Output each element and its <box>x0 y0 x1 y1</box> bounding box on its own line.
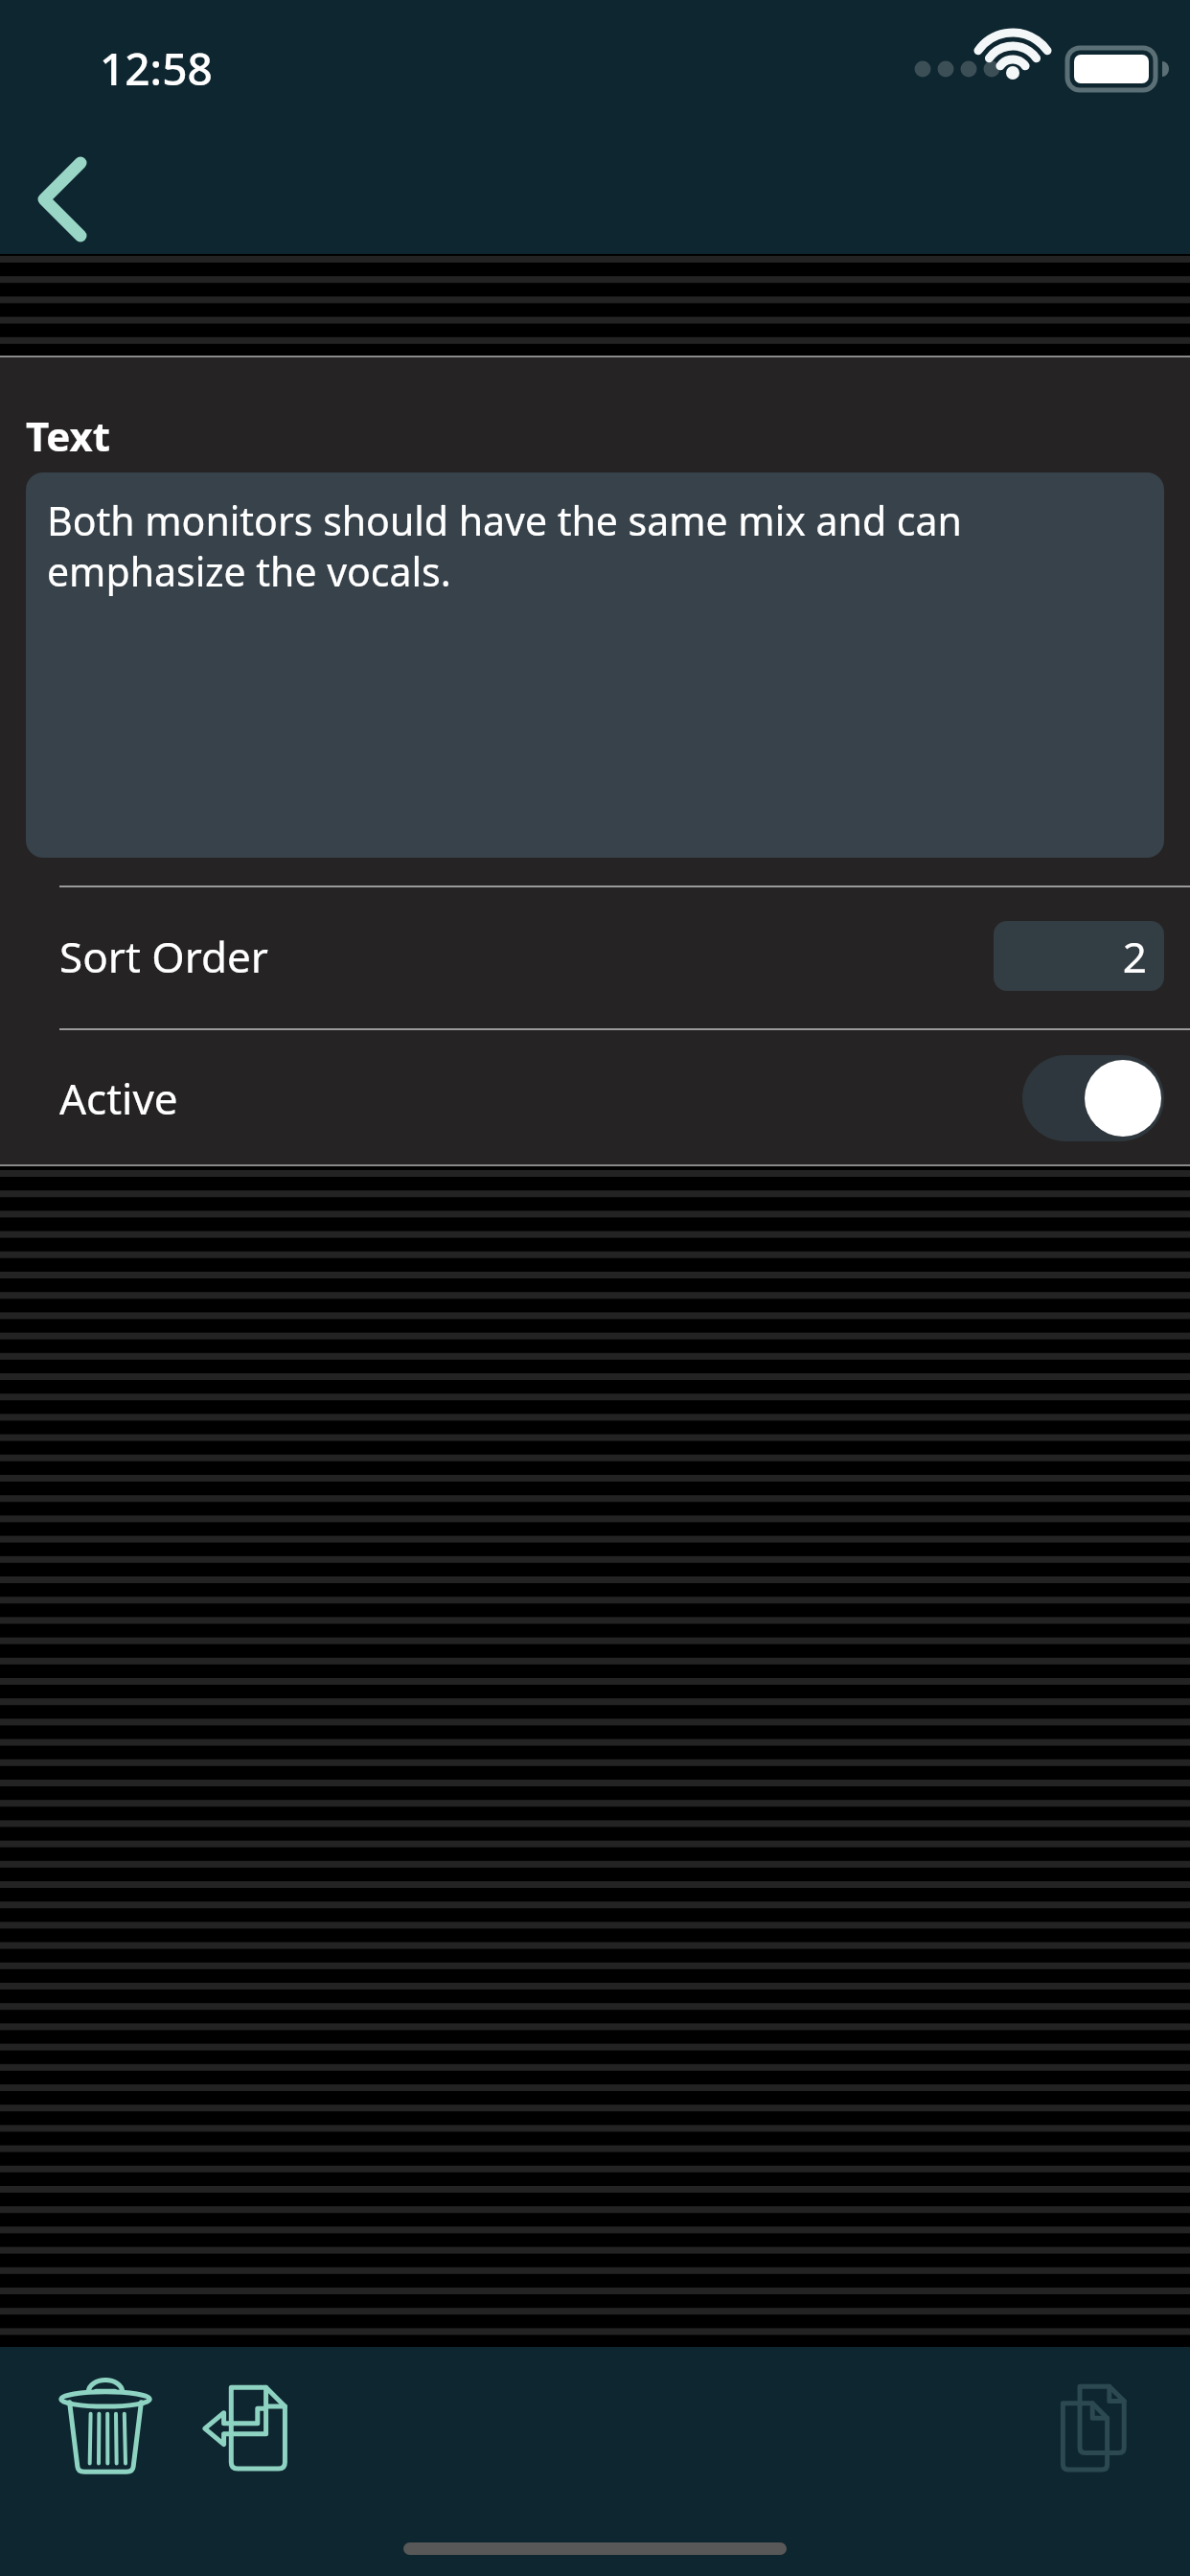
button[interactable]: Move <box>196 2374 302 2479</box>
staticText: Text <box>26 408 111 463</box>
button[interactable]: Both monitors should have the same mix a… <box>26 472 1164 858</box>
staticText: 12:58 <box>100 38 213 99</box>
button[interactable]: Active toggle <box>1022 1055 1164 1141</box>
staticText: Sort Order <box>59 928 268 985</box>
staticText: Both monitors should have the same mix a… <box>47 494 1147 598</box>
button[interactable]: Active <box>0 1030 1190 1166</box>
button[interactable]: Duplicate <box>1038 2374 1143 2479</box>
staticText: Active <box>59 1069 178 1127</box>
staticText: 2 <box>1122 928 1147 985</box>
button[interactable]: Back <box>21 142 113 234</box>
button[interactable]: Delete <box>53 2374 158 2479</box>
button[interactable]: Sort Order <box>0 887 1190 1024</box>
